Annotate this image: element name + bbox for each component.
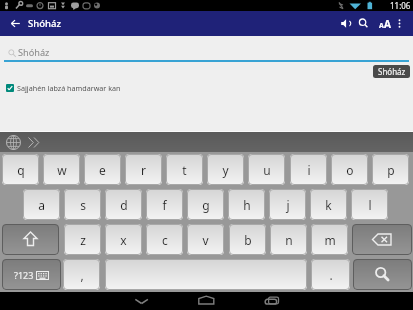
button[interactable]: f [146,189,183,220]
button[interactable]: o [331,154,368,185]
button[interactable]: y [207,154,244,185]
staticText: , [80,267,84,283]
staticText: Shóház [28,17,61,30]
button[interactable]: b [229,224,266,255]
button[interactable]: Back [127,292,156,310]
staticText: a [38,197,45,213]
staticText: b [244,232,252,248]
staticText: i [307,162,311,178]
button[interactable]: Delete [352,224,412,255]
staticText: A [384,17,391,31]
button[interactable]: Shóház [373,65,410,78]
button[interactable]: h [228,189,265,220]
button[interactable]: More options [391,11,408,36]
button[interactable]: Search [353,259,412,290]
button[interactable]: Shóház [0,44,413,64]
staticText: k [325,197,332,213]
staticText: n [285,232,293,248]
button[interactable]: Symbols [2,259,61,290]
button[interactable]: Home [192,292,221,310]
staticText: c [162,232,168,248]
button[interactable]: . [311,259,350,290]
button[interactable]: w [43,154,80,185]
button[interactable]: x [105,224,142,255]
button[interactable]: m [311,224,348,255]
staticText: j [286,197,290,213]
staticText: r [141,162,146,178]
staticText: Sajjahén labzá hamdarwar kan [17,83,121,93]
staticText: z [80,232,86,248]
staticText: t [182,162,187,178]
staticText: v [202,232,209,248]
staticText: q [17,162,25,178]
button[interactable]: Sajjahén labzá hamdarwar kan [0,81,413,95]
staticText: 11:06 [390,0,411,11]
button[interactable]: Space [105,259,307,290]
staticText: m [324,232,336,248]
staticText: Shóház [378,66,406,77]
staticText: s [80,197,86,213]
button[interactable]: k [310,189,347,220]
staticText: f [162,197,167,213]
button[interactable]: p [372,154,409,185]
button[interactable]: v [187,224,224,255]
button[interactable]: , [63,259,100,290]
button[interactable]: c [146,224,183,255]
button[interactable]: Search [354,11,373,36]
button[interactable]: Shift [2,224,59,255]
button[interactable]: z [64,224,101,255]
button[interactable]: Back [3,11,28,36]
staticText: ?123 [14,269,34,281]
button[interactable]: d [105,189,142,220]
button[interactable]: n [270,224,307,255]
staticText: x [120,232,127,248]
button[interactable]: e [84,154,121,185]
staticText: y [222,162,229,178]
staticText: A [379,21,384,31]
button[interactable]: g [187,189,224,220]
button[interactable]: Font size [375,11,394,36]
button[interactable]: r [125,154,162,185]
staticText: u [263,162,271,178]
button[interactable]: t [166,154,203,185]
button[interactable]: l [351,189,388,220]
staticText: h [243,197,251,213]
button[interactable]: i [290,154,327,185]
button[interactable]: s [64,189,101,220]
button[interactable]: q [2,154,39,185]
staticText: Shóház [18,46,50,59]
staticText: w [57,162,67,178]
button[interactable]: j [269,189,306,220]
staticText: d [120,197,128,213]
button[interactable]: a [23,189,60,220]
button[interactable]: Input method [0,132,413,152]
button[interactable]: Recent apps [258,292,287,310]
button[interactable]: Read aloud [336,11,355,36]
button[interactable]: u [248,154,285,185]
staticText: g [202,197,210,213]
staticText: . [329,267,333,283]
staticText: p [387,162,395,178]
staticText: e [99,162,106,178]
staticText: o [346,162,354,178]
staticText: l [368,197,372,213]
